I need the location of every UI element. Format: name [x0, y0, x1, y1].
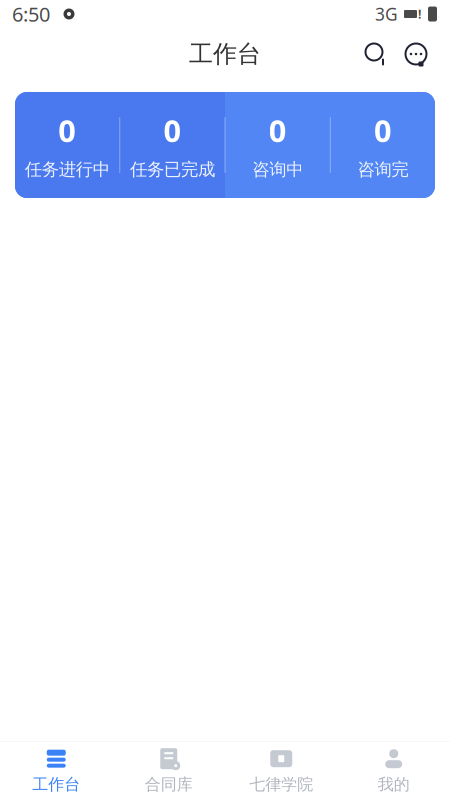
staticText: 0	[163, 110, 181, 151]
staticText: 任务进行中	[25, 159, 110, 180]
button[interactable]: Messages	[396, 32, 436, 76]
staticText: 工作台	[32, 775, 80, 794]
staticText: 任务已完成	[130, 159, 215, 180]
staticText: 我的	[378, 775, 410, 794]
staticText: 合同库	[145, 775, 193, 794]
staticText: 工作台	[189, 39, 261, 69]
staticText: !	[418, 6, 421, 22]
button[interactable]: 工作台	[0, 742, 112, 800]
staticText: 0	[374, 110, 392, 151]
staticText: 咨询完	[357, 159, 408, 180]
staticText: 6:50	[12, 1, 50, 27]
button[interactable]: Search	[356, 32, 396, 76]
staticText: 七律学院	[249, 775, 313, 794]
staticText: 3G	[375, 2, 398, 25]
button[interactable]: 0	[15, 92, 435, 198]
button[interactable]: 我的	[337, 742, 450, 800]
staticText: 0	[58, 110, 76, 151]
staticText: 0	[269, 110, 287, 151]
button[interactable]: 七律学院	[225, 742, 337, 800]
staticText: 咨询中	[252, 159, 303, 180]
button[interactable]: 合同库	[112, 742, 225, 800]
